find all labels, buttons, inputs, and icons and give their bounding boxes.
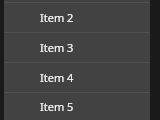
staticText: Item 4 (40, 70, 74, 85)
button[interactable]: Item 2 (4, 3, 150, 32)
button[interactable]: Item 4 (4, 63, 150, 92)
button[interactable]: Item 3 (4, 33, 150, 62)
button[interactable]: Item 5 (4, 93, 150, 120)
staticText: Item 5 (40, 99, 74, 114)
staticText: Item 3 (40, 40, 74, 55)
staticText: Item 2 (40, 10, 74, 25)
